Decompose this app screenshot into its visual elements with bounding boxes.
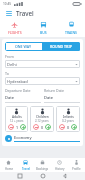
staticText: ONE WAY bbox=[15, 44, 32, 49]
staticText: 2-12 years bbox=[35, 119, 49, 123]
staticText: 0 bbox=[65, 125, 71, 130]
button[interactable]: Increase Infants bbox=[71, 124, 77, 130]
button[interactable]: History bbox=[51, 158, 68, 172]
staticText: Home bbox=[5, 167, 13, 171]
button[interactable]: Delhi bbox=[5, 60, 80, 68]
staticText: To bbox=[5, 71, 9, 76]
button[interactable]: Travel bbox=[17, 158, 34, 172]
staticText: Bookings bbox=[36, 167, 49, 171]
staticText: Hyderabad bbox=[7, 79, 75, 84]
staticText: 0-2 years bbox=[62, 119, 74, 123]
button[interactable]: Increase Adults bbox=[20, 124, 26, 130]
staticText: Travel bbox=[22, 167, 30, 171]
button[interactable]: ROUND TRIP bbox=[42, 42, 80, 51]
staticText: Economy bbox=[14, 135, 32, 140]
button[interactable]: Hyderabad bbox=[5, 77, 80, 85]
button[interactable]: Home bbox=[0, 158, 17, 172]
staticText: 1 bbox=[14, 125, 20, 130]
staticText: 10:45 bbox=[3, 2, 12, 6]
staticText: BUS bbox=[40, 30, 47, 35]
button[interactable]: Decrease Adults bbox=[8, 124, 14, 130]
staticText: Date bbox=[5, 95, 15, 100]
button[interactable]: Decrease Infants bbox=[59, 124, 65, 130]
button[interactable]: Open navigation menu bbox=[4, 8, 14, 18]
staticText: TRAINS bbox=[65, 30, 77, 35]
staticText: Profile bbox=[72, 167, 81, 171]
button[interactable]: Departure Date bbox=[5, 88, 41, 103]
button[interactable]: FLIGHTS bbox=[0, 19, 29, 37]
staticText: Delhi bbox=[7, 62, 75, 67]
staticText: Departure Date bbox=[5, 88, 31, 93]
button[interactable]: ONE WAY bbox=[5, 42, 42, 51]
staticText: 12 + years bbox=[10, 119, 24, 123]
button[interactable]: Increase Children bbox=[45, 124, 51, 130]
staticText: FLIGHTS bbox=[8, 30, 22, 35]
button[interactable]: TRAINS bbox=[57, 19, 85, 37]
button[interactable]: Decrease Children bbox=[33, 124, 39, 130]
button[interactable]: Economy bbox=[5, 135, 80, 142]
staticText: Travel bbox=[16, 9, 34, 17]
staticText: Children bbox=[36, 115, 49, 119]
staticText: Date bbox=[44, 95, 54, 100]
staticText: Adults bbox=[12, 115, 22, 119]
button[interactable]: Profile bbox=[68, 158, 85, 172]
staticText: Infants bbox=[63, 115, 74, 119]
button[interactable]: Bookings bbox=[34, 158, 51, 172]
staticText: ROUND TRIP bbox=[50, 44, 72, 49]
button[interactable]: Return Date bbox=[44, 88, 80, 103]
staticText: From bbox=[5, 54, 14, 59]
staticText: Return Date bbox=[44, 88, 64, 93]
staticText: 0 bbox=[39, 125, 45, 130]
staticText: History bbox=[55, 167, 65, 171]
button[interactable]: BUS bbox=[29, 19, 57, 37]
